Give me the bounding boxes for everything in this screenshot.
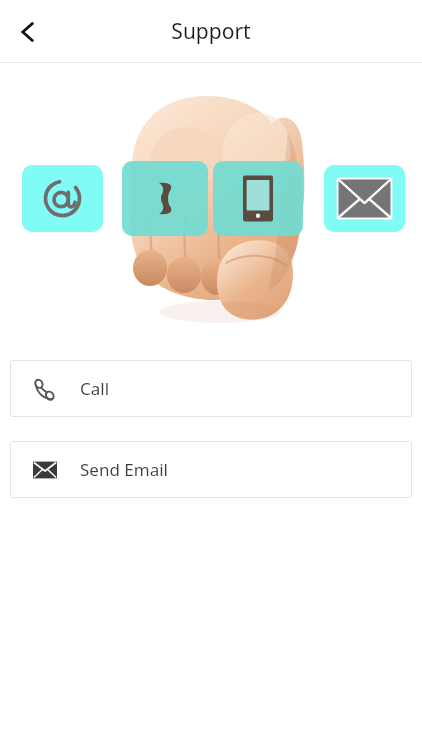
button[interactable]: Back bbox=[4, 8, 52, 56]
button[interactable]: Send Email bbox=[10, 441, 412, 498]
staticText: Call bbox=[80, 377, 110, 400]
staticText: Send Email bbox=[80, 458, 168, 481]
staticText: Support bbox=[171, 17, 251, 46]
button[interactable]: Call bbox=[10, 360, 412, 417]
